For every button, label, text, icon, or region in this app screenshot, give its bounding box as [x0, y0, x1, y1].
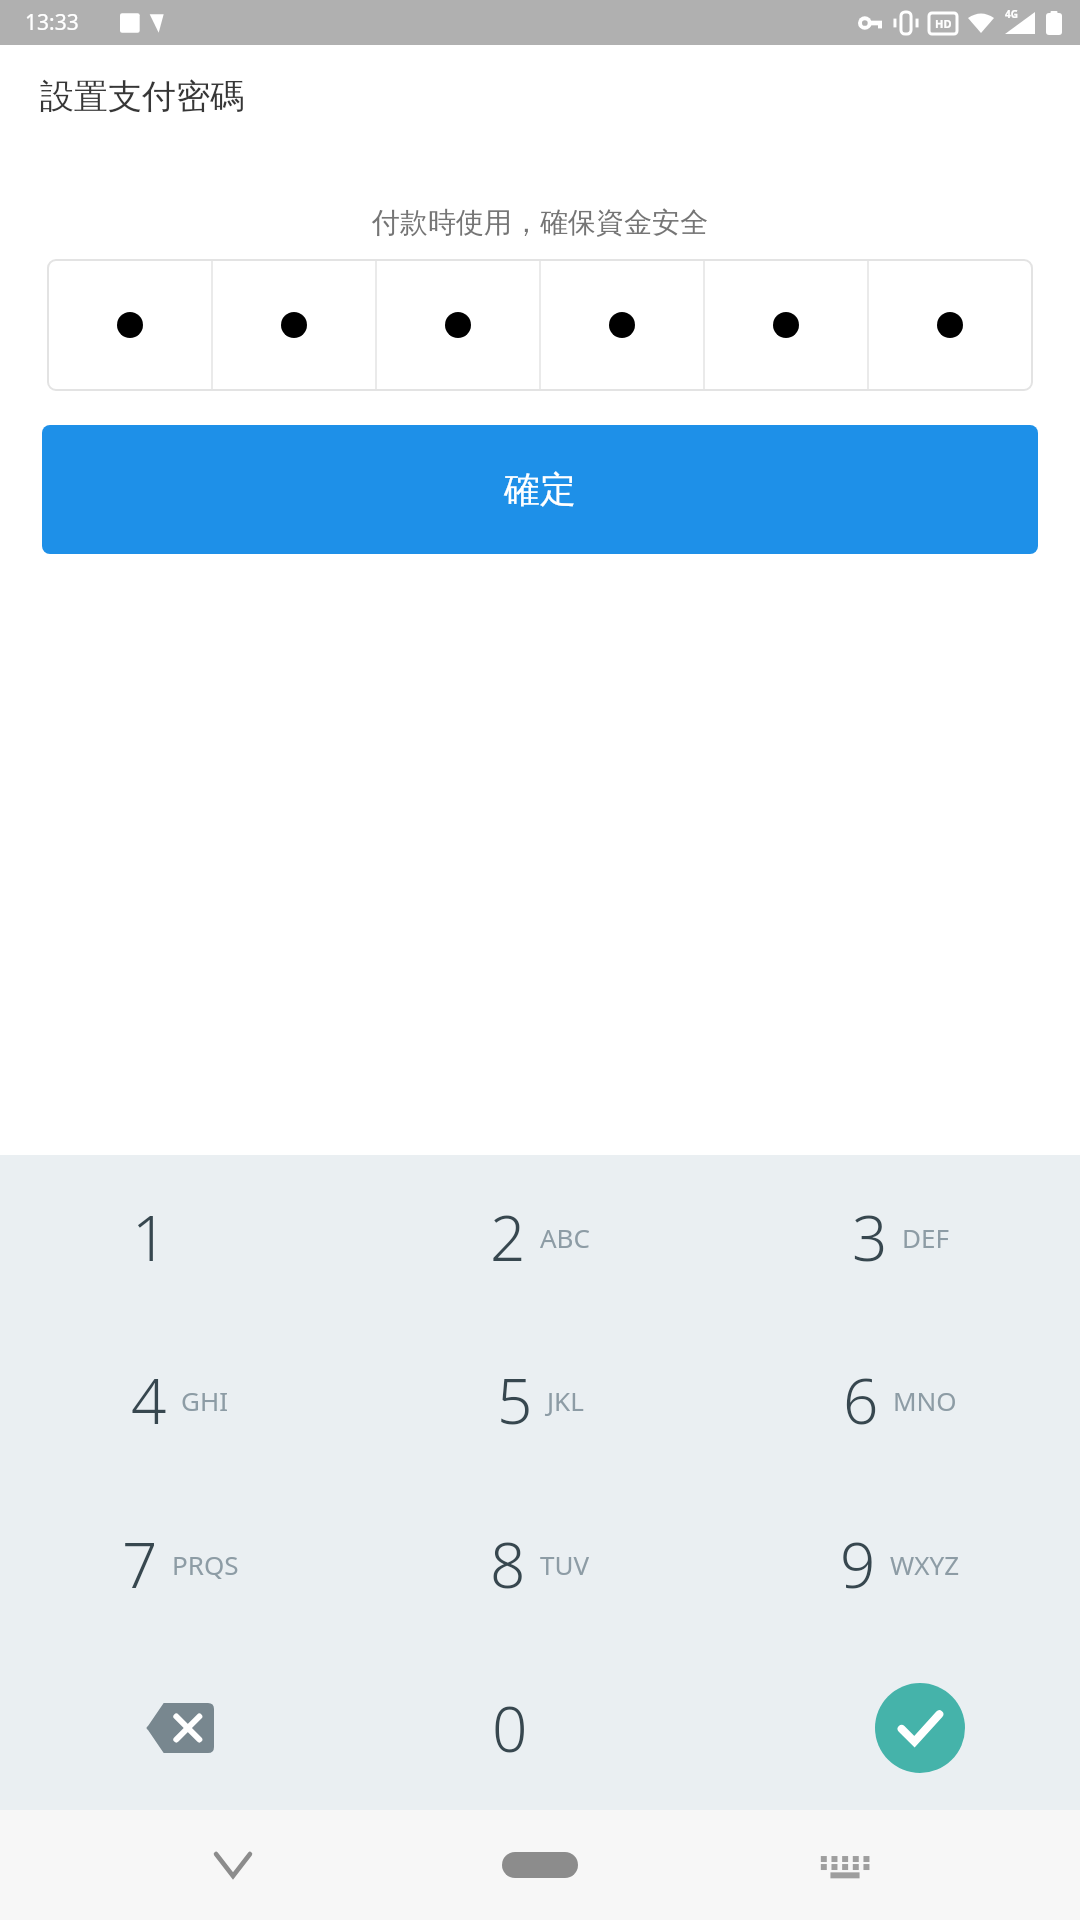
staticText: 確定 [504, 467, 576, 512]
staticText: 5 [497, 1358, 533, 1442]
staticText: 4G [1005, 7, 1018, 21]
staticText: 3 [852, 1195, 888, 1279]
staticText: 付款時使用，確保資金安全 [0, 205, 1080, 240]
button[interactable] [376, 260, 540, 390]
button[interactable]: 0 [360, 1646, 720, 1810]
staticText: 6 [843, 1358, 879, 1442]
staticText: HD [935, 16, 952, 31]
button[interactable] [540, 260, 704, 390]
button[interactable]: 5 [360, 1318, 720, 1482]
staticText: GHI [181, 1383, 229, 1418]
button[interactable]: 1 [0, 1155, 360, 1318]
button[interactable] [704, 260, 868, 390]
staticText: 9 [840, 1522, 876, 1606]
button[interactable]: Keyboard [785, 1810, 905, 1920]
button[interactable] [868, 260, 1032, 390]
button[interactable]: 確定 [42, 425, 1038, 554]
staticText: 1 [132, 1195, 168, 1279]
staticText: JKL [547, 1383, 584, 1418]
staticText: PRQS [172, 1547, 239, 1582]
button[interactable]: 3 [720, 1155, 1080, 1318]
staticText: DEF [902, 1220, 949, 1255]
staticText: 13:33 [25, 8, 79, 37]
staticText: TUV [540, 1547, 590, 1582]
button[interactable]: 6 [720, 1318, 1080, 1482]
staticText: 設置支付密碼 [40, 75, 244, 118]
staticText: ABC [540, 1220, 590, 1255]
button[interactable]: 4 [0, 1318, 360, 1482]
button[interactable]: Confirm [720, 1646, 1080, 1810]
staticText: MNO [893, 1383, 957, 1418]
button[interactable]: Home [460, 1810, 620, 1920]
staticText: 8 [490, 1522, 526, 1606]
staticText: 2 [490, 1195, 526, 1279]
staticText: 7 [122, 1522, 158, 1606]
button[interactable]: 2 [360, 1155, 720, 1318]
button[interactable]: 7 [0, 1482, 360, 1646]
button[interactable]: Back [173, 1810, 293, 1920]
button[interactable]: Delete [0, 1646, 360, 1810]
staticText: WXYZ [890, 1547, 960, 1582]
staticText: 4 [131, 1358, 167, 1442]
button[interactable] [212, 260, 376, 390]
staticText: 0 [492, 1686, 528, 1770]
button[interactable]: 8 [360, 1482, 720, 1646]
button[interactable]: 9 [720, 1482, 1080, 1646]
button[interactable] [48, 260, 212, 390]
